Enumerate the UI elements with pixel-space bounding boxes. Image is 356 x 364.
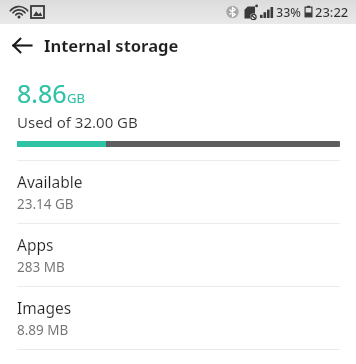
button[interactable]: 8.86 — [0, 66, 356, 160]
button[interactable]: Apps — [0, 224, 356, 286]
staticText: GB — [67, 89, 85, 107]
staticText: Used of 32.00 GB — [17, 112, 138, 132]
staticText: 23.14 GB — [17, 195, 74, 213]
staticText: Internal storage — [44, 34, 179, 56]
staticText: 283 MB — [17, 258, 65, 276]
staticText: 8.86 — [17, 76, 67, 110]
staticText: Images — [17, 297, 72, 318]
button[interactable]: Available — [0, 161, 356, 223]
staticText: 8.89 MB — [17, 321, 69, 339]
button[interactable]: Back — [0, 24, 44, 66]
staticText: 23:22 — [315, 3, 349, 21]
button[interactable]: Images — [0, 287, 356, 349]
staticText: Available — [17, 171, 83, 192]
staticText: Apps — [17, 234, 54, 255]
staticText: 33% — [276, 4, 301, 21]
